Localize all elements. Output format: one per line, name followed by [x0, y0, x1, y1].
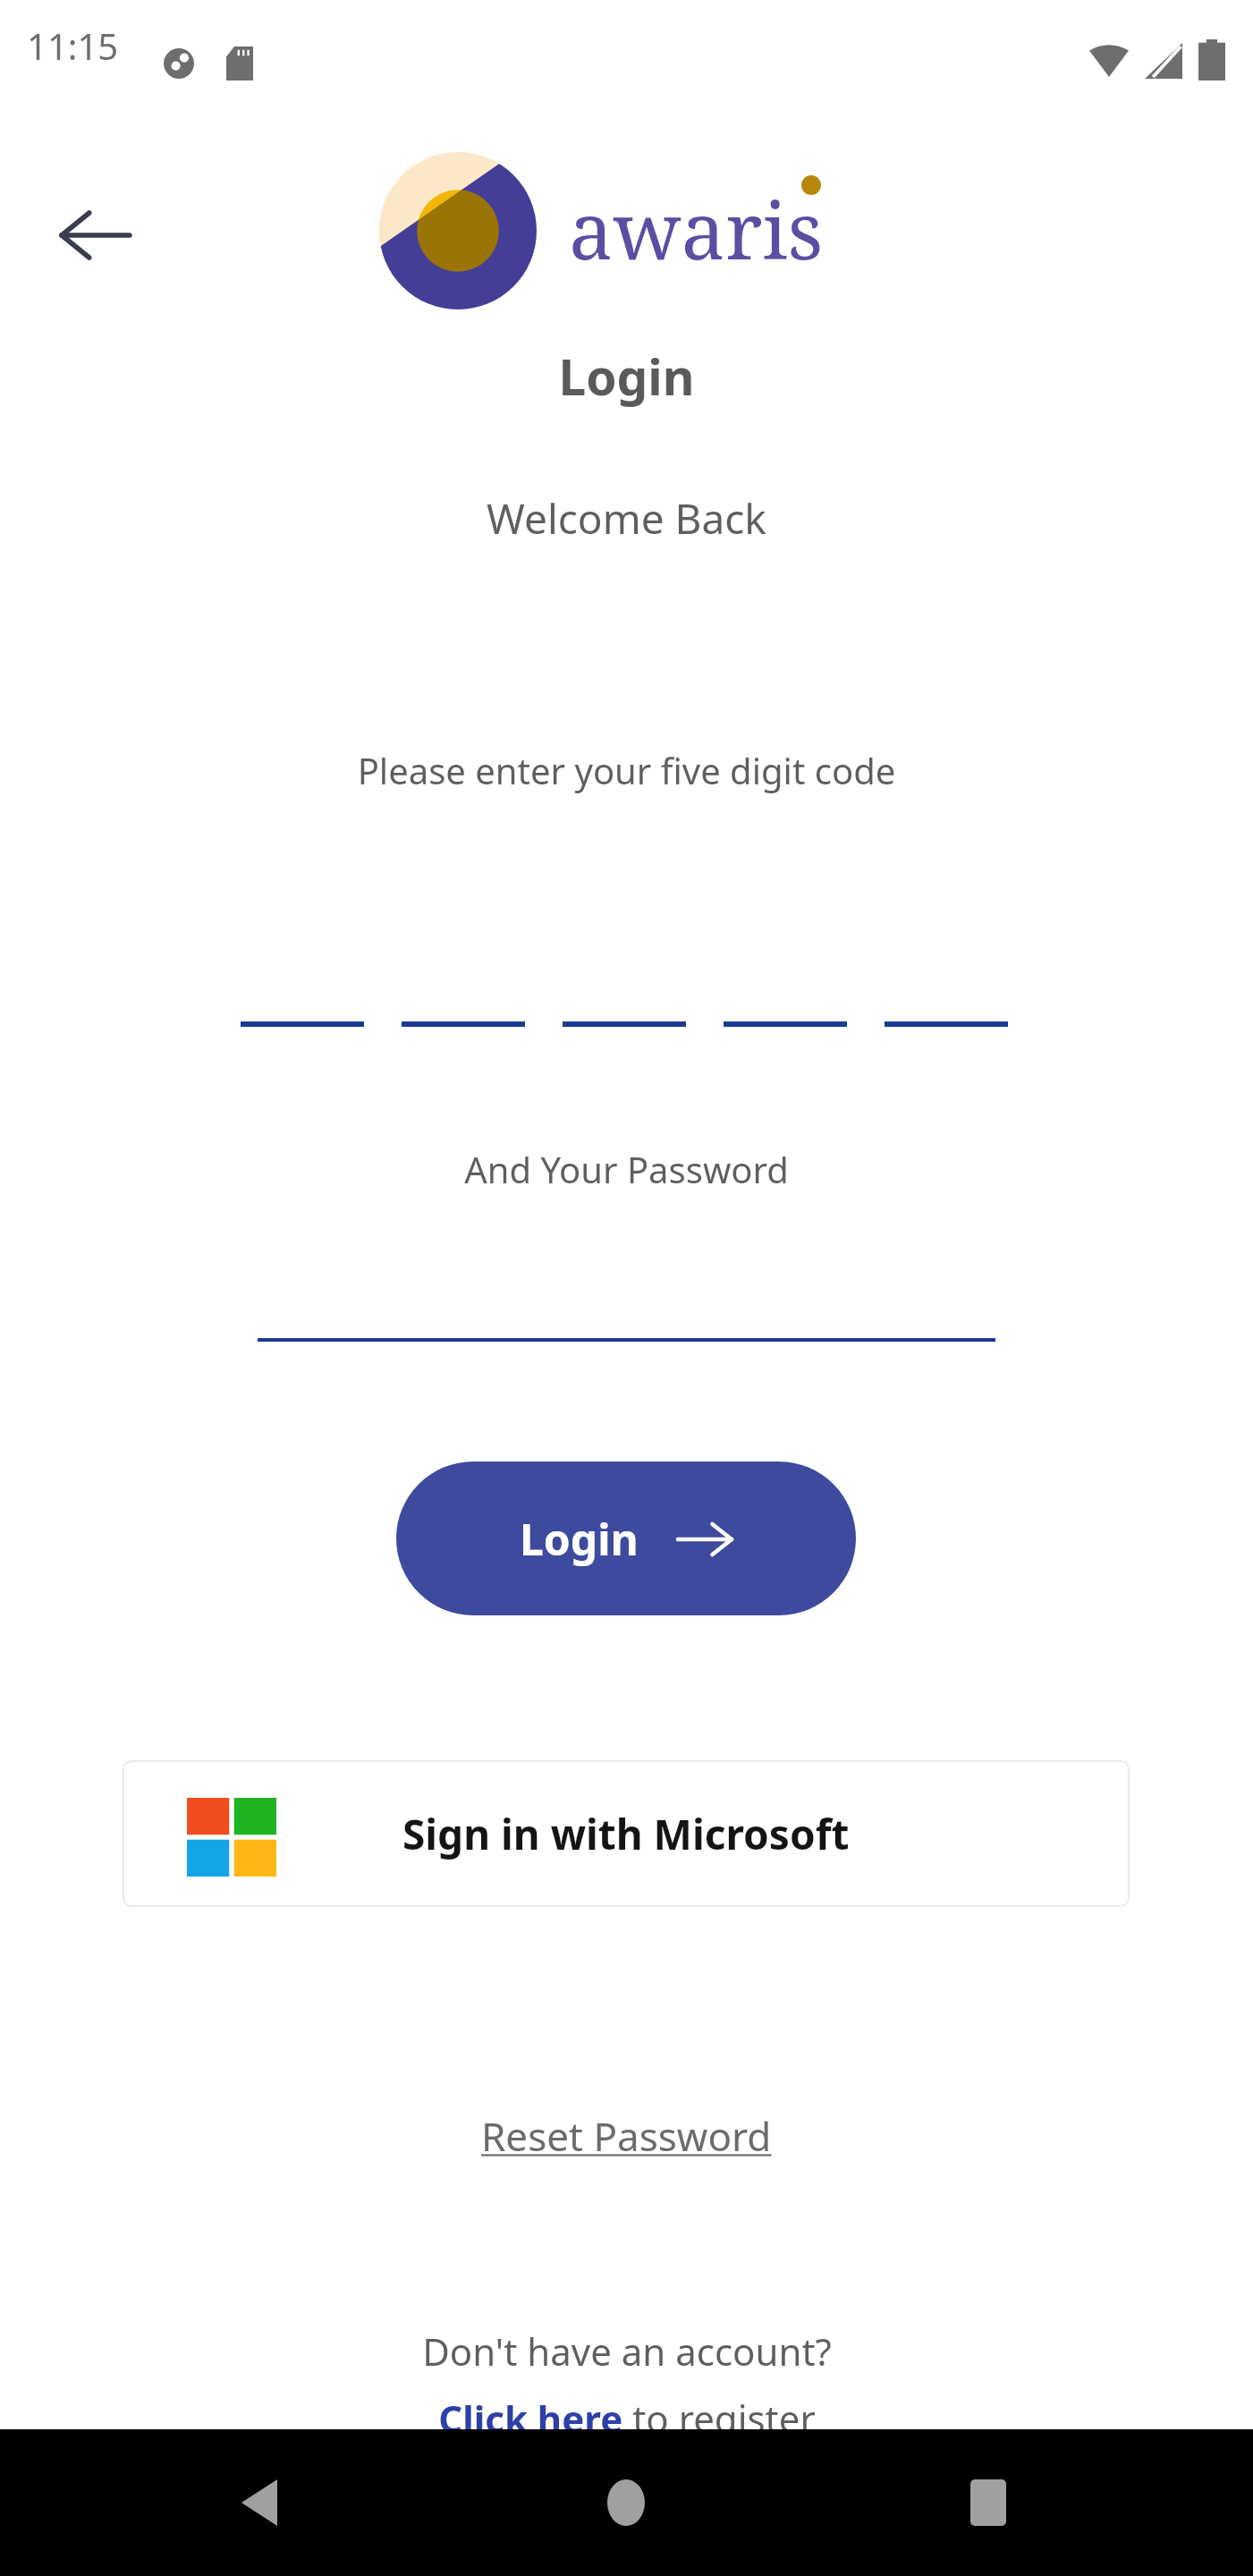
button[interactable]: Recent apps — [935, 2458, 1042, 2547]
button[interactable]: Back — [43, 183, 146, 286]
button[interactable]: Code digit — [241, 971, 364, 1027]
staticText: Reset Password — [481, 2109, 772, 2163]
button[interactable]: Sign in with Microsoft — [123, 1760, 1130, 1907]
button[interactable]: Code digit — [563, 971, 686, 1027]
staticText: Login — [520, 1510, 639, 1568]
button[interactable]: Reset Password — [470, 2104, 783, 2168]
button[interactable]: Password — [258, 1256, 995, 1342]
staticText: Welcome Back — [0, 490, 1253, 547]
staticText: 11:15 — [27, 21, 119, 70]
button[interactable]: Click here to register — [438, 2393, 816, 2444]
button[interactable]: Home — [572, 2458, 680, 2547]
staticText: Please enter your five digit code — [0, 746, 1253, 794]
staticText: Don't have an account? — [422, 2326, 832, 2377]
staticText: Login — [0, 343, 1253, 410]
button[interactable]: Code digit — [402, 971, 525, 1027]
staticText: And Your Password — [0, 1145, 1253, 1193]
staticText: Sign in with Microsoft — [402, 1806, 850, 1862]
button[interactable]: Login — [396, 1462, 856, 1615]
staticText: awaris — [569, 175, 824, 283]
staticText: Click here to register — [438, 2393, 816, 2444]
button[interactable]: Code digit — [885, 971, 1008, 1027]
button[interactable]: Back — [206, 2458, 313, 2547]
button[interactable]: Code digit — [724, 971, 847, 1027]
